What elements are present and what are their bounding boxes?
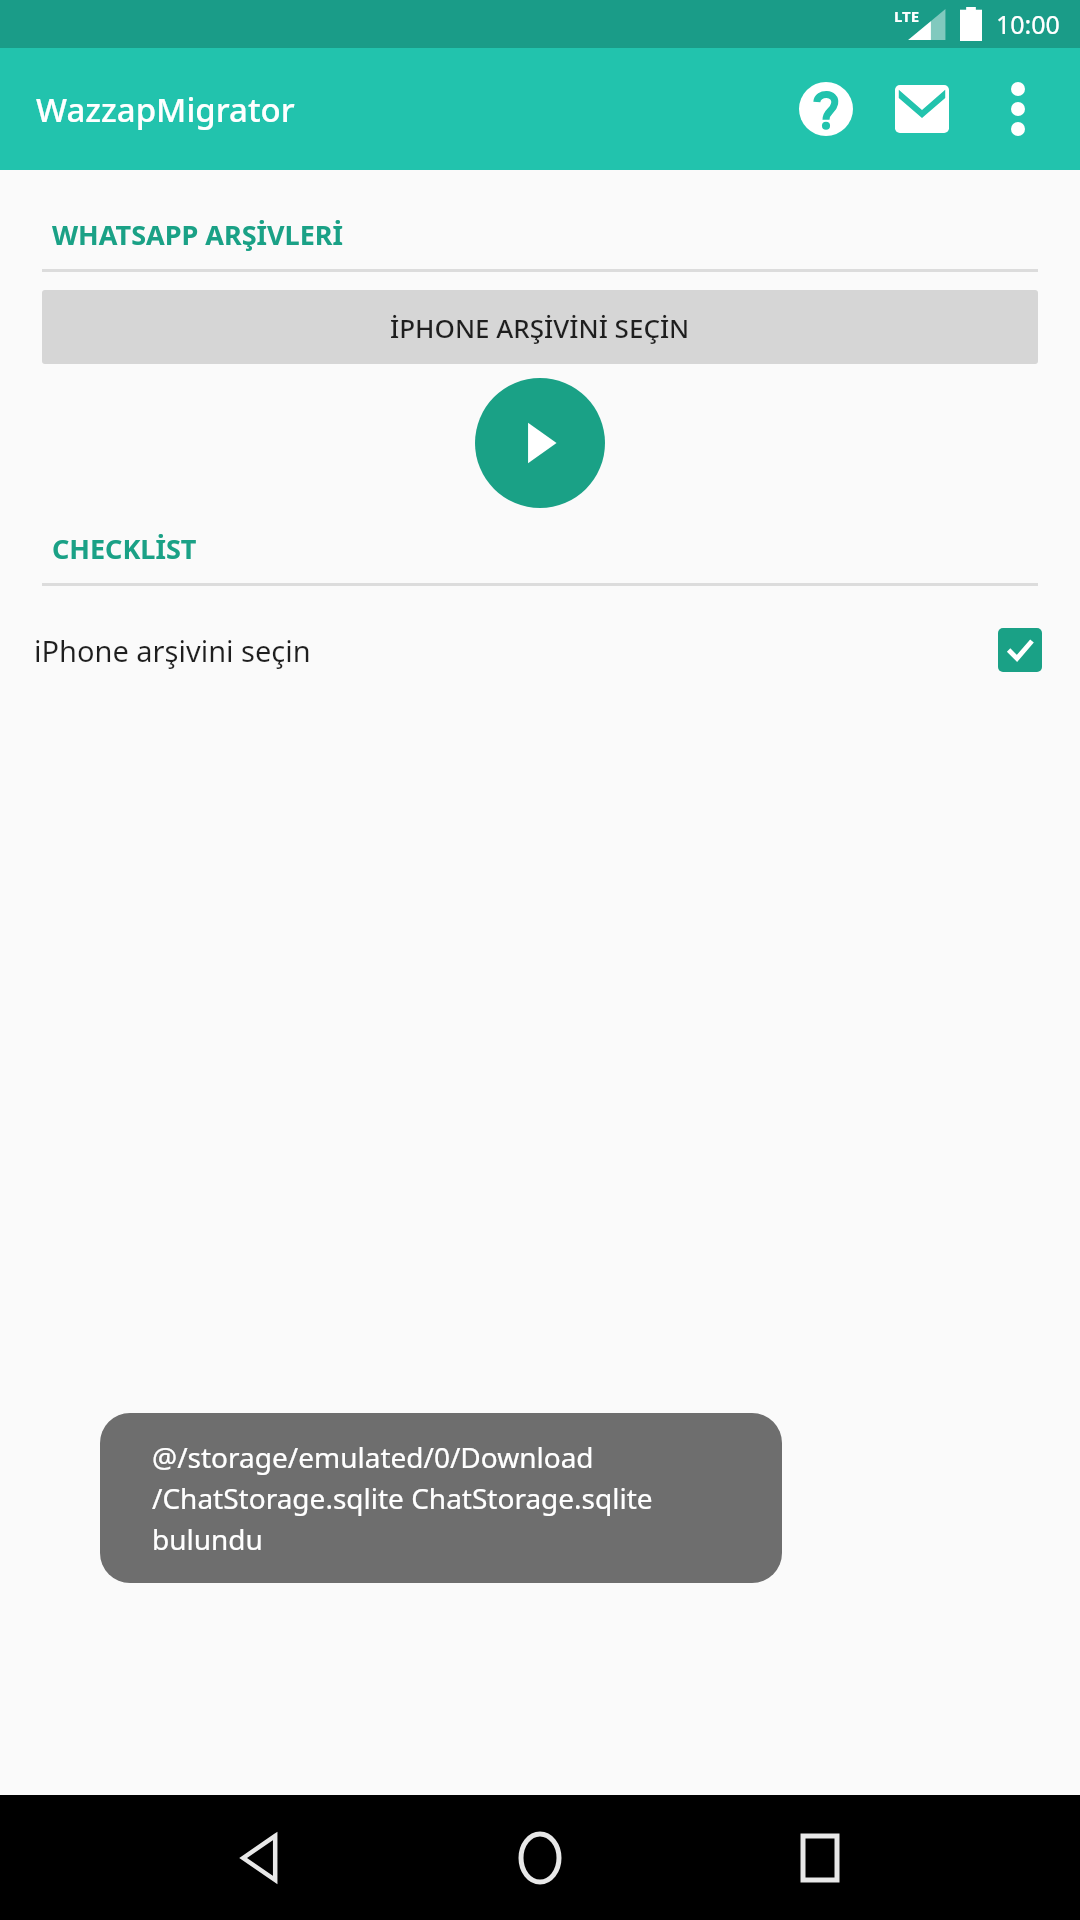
button[interactable]: Help [778,61,874,157]
staticText: iPhone arşivini seçin [34,631,311,670]
staticText: LTE [894,6,920,26]
staticText: WazzapMigrator [36,87,295,132]
button[interactable]: Start migration [475,378,605,508]
button[interactable]: Back [120,1795,400,1920]
button[interactable]: More options [970,61,1066,157]
button[interactable]: Home [400,1795,680,1920]
button[interactable]: iPhone arşivini seçin [0,612,1080,688]
staticText: 10:00 [996,7,1060,41]
staticText: @/storage/emulated/0/Download /ChatStora… [152,1438,653,1558]
staticText: CHECKLİST [52,530,197,567]
button[interactable]: Email [874,61,970,157]
button[interactable]: Recent apps [680,1795,960,1920]
staticText: WHATSAPP ARŞİVLERİ [52,216,344,253]
button[interactable]: İPHONE ARŞİVİNİ SEÇİN [42,290,1038,364]
staticText: İPHONE ARŞİVİNİ SEÇİN [390,310,690,345]
